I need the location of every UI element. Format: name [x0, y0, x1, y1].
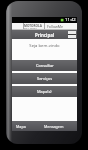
staticText: Consultar — [36, 63, 54, 68]
staticText: FollowMe — [47, 24, 64, 29]
button[interactable]: Mapa(s) — [12, 86, 77, 97]
staticText: DE LISTAS — [24, 28, 37, 31]
staticText: Serviços — [37, 76, 53, 81]
staticText: Mapa — [16, 124, 26, 129]
button[interactable]: Menu — [68, 31, 76, 38]
staticText: Mapa(s) — [37, 89, 52, 94]
button[interactable]: Consultar — [12, 60, 77, 71]
staticText: 11:42 — [65, 17, 76, 23]
staticText: Mensagem — [44, 124, 64, 129]
button[interactable]: Mapa — [12, 121, 30, 131]
staticText: Principal — [35, 32, 55, 38]
button[interactable]: Mensagem — [30, 121, 77, 131]
staticText: Seja bem-vindo — [12, 43, 77, 49]
staticText: MOTOROLA — [24, 24, 42, 28]
button[interactable]: Serviços — [12, 73, 77, 84]
